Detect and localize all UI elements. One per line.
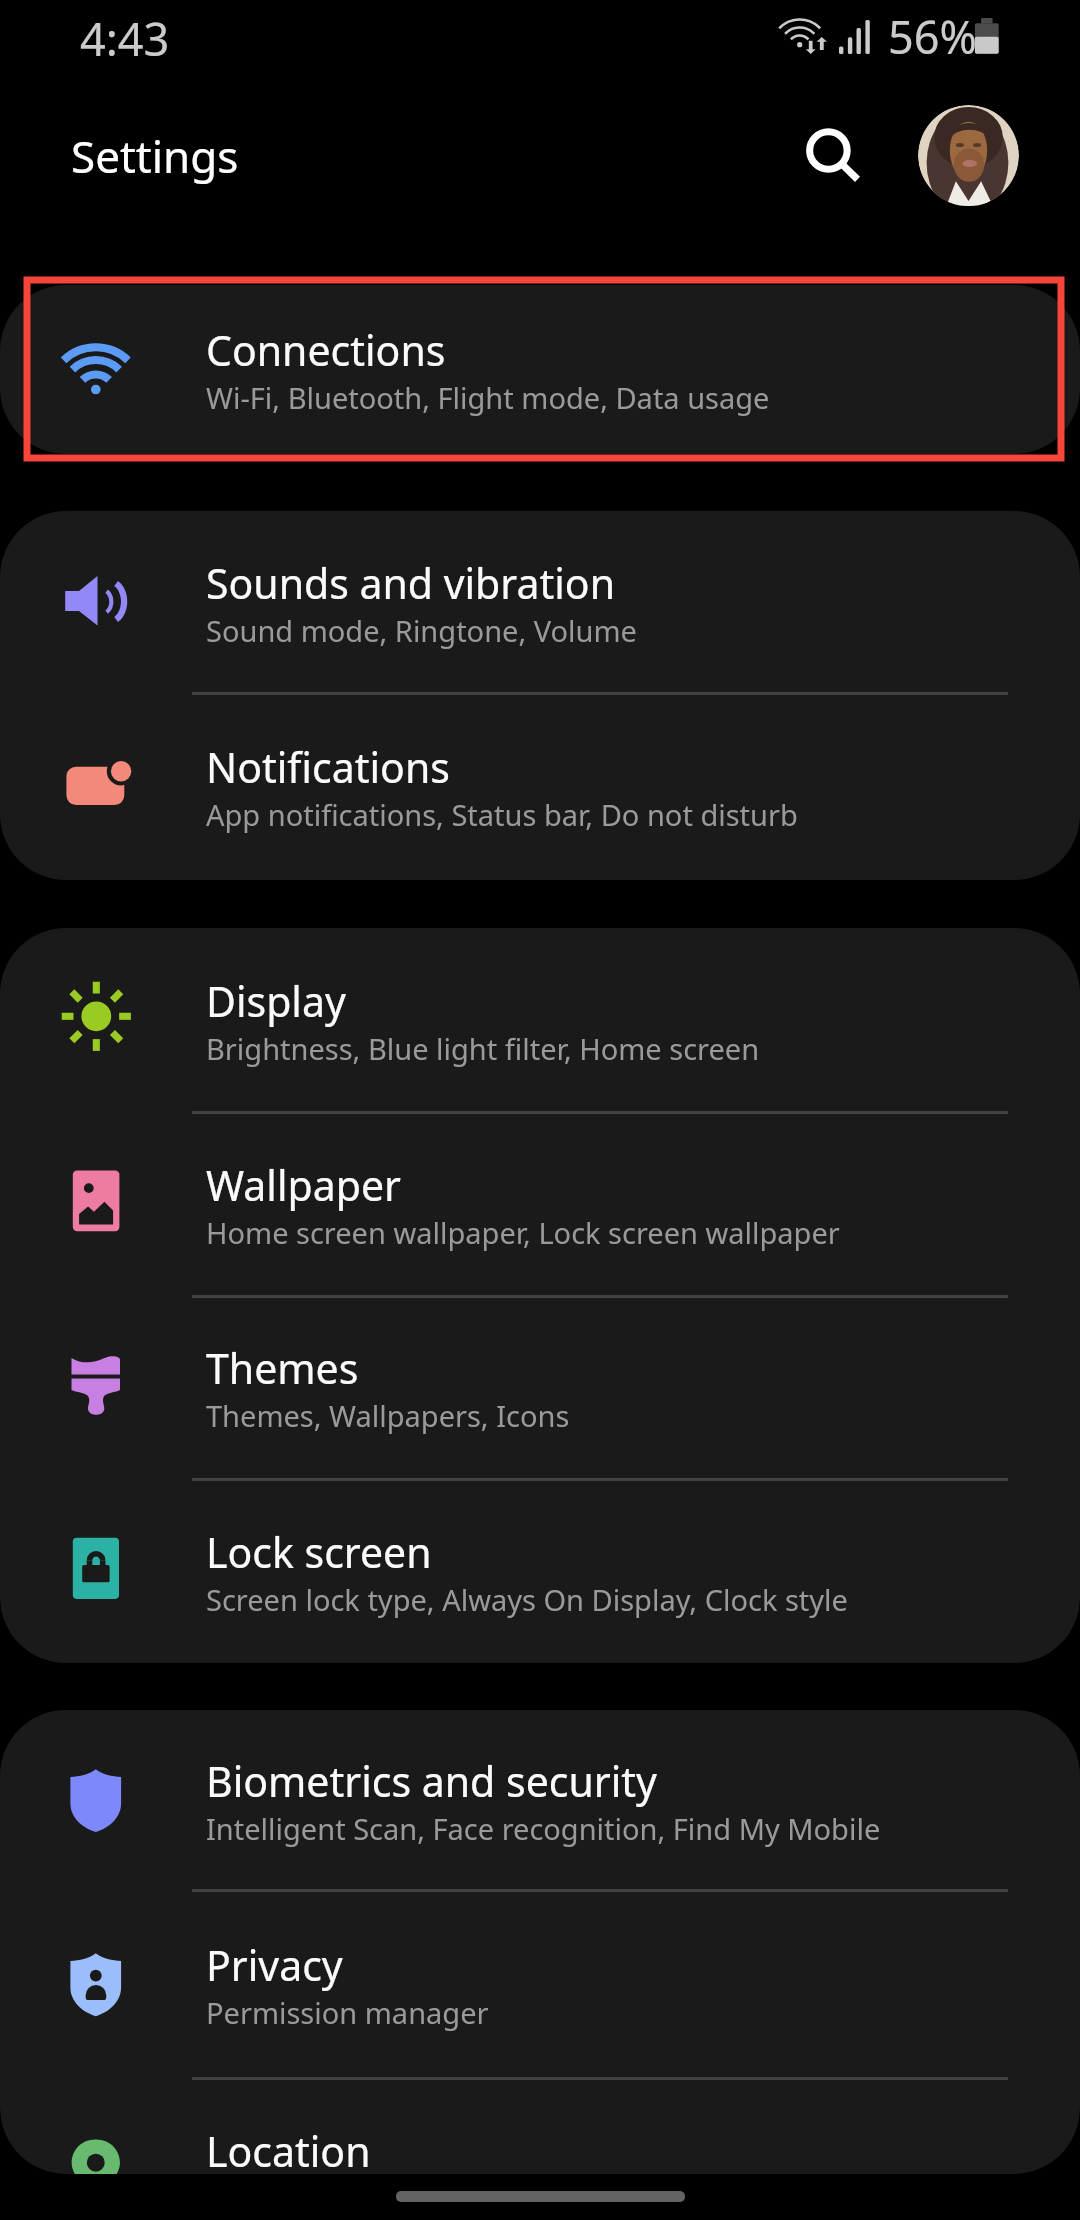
staticText: Sounds and vibration	[206, 555, 615, 611]
staticText: Location	[206, 2123, 371, 2179]
staticText: Privacy	[206, 1937, 343, 1993]
button[interactable]: Sounds and vibration	[0, 511, 1080, 693]
staticText: 4:43	[80, 8, 170, 69]
button[interactable]: Privacy	[0, 1890, 1080, 2078]
staticText: Notifications	[206, 739, 450, 795]
staticText: Wi-Fi, Bluetooth, Flight mode, Data usag…	[206, 378, 770, 417]
button[interactable]: Themes	[0, 1296, 1080, 1479]
staticText: Lock screen	[206, 1524, 432, 1580]
button[interactable]: Search	[768, 90, 890, 212]
staticText: Connections	[206, 322, 446, 378]
staticText: Location services	[206, 2179, 439, 2218]
staticText: Home screen wallpaper, Lock screen wallp…	[206, 1213, 840, 1252]
staticText: Themes	[206, 1340, 359, 1396]
button[interactable]: Biometrics and security	[0, 1710, 1080, 1890]
button[interactable]: Location	[0, 2078, 1080, 2220]
button[interactable]: Connections	[0, 285, 1080, 454]
staticText: Sound mode, Ringtone, Volume	[206, 611, 637, 650]
staticText: Display	[206, 973, 346, 1029]
staticText: App notifications, Status bar, Do not di…	[206, 795, 798, 834]
button[interactable]: Notifications	[0, 693, 1080, 880]
staticText: Settings	[71, 126, 239, 186]
staticText: Intelligent Scan, Face recognition, Find…	[206, 1809, 881, 1848]
staticText: 56%	[888, 6, 977, 67]
staticText: Permission manager	[206, 1993, 489, 2032]
staticText: Screen lock type, Always On Display, Clo…	[206, 1580, 848, 1619]
button[interactable]: Lock screen	[0, 1479, 1080, 1663]
button[interactable]: Profile	[908, 95, 1029, 216]
button[interactable]: Wallpaper	[0, 1112, 1080, 1296]
staticText: Themes, Wallpapers, Icons	[206, 1396, 570, 1435]
staticText: Brightness, Blue light filter, Home scre…	[206, 1029, 760, 1068]
staticText: Wallpaper	[206, 1157, 401, 1213]
button[interactable]: Display	[0, 928, 1080, 1112]
staticText: Biometrics and security	[206, 1753, 657, 1809]
